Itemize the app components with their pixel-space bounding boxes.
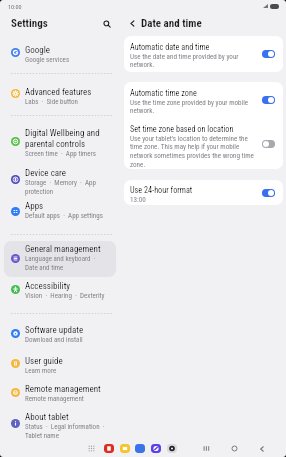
- staticText: Storage · Memory · App protection: [25, 179, 96, 196]
- button[interactable]: Back: [126, 17, 139, 30]
- button[interactable]: Back: [257, 444, 266, 453]
- staticText: User guide: [25, 356, 63, 367]
- staticText: Google: [25, 45, 51, 56]
- staticText: Download and install: [25, 336, 83, 344]
- staticText: Digital Wellbeing and parental controls: [25, 128, 100, 150]
- staticText: Use 24-hour format: [130, 185, 193, 195]
- button[interactable]: General management: [25, 244, 117, 272]
- staticText: Use your tablet's location to determine …: [130, 134, 255, 169]
- staticText: Apps: [25, 201, 44, 212]
- button[interactable]: App: [104, 444, 114, 453]
- staticText: Vision · Hearing · Dexterity: [25, 292, 105, 300]
- button[interactable]: Google: [25, 45, 117, 64]
- button[interactable]: All apps: [87, 444, 95, 452]
- button[interactable]: Switch on: [262, 50, 275, 58]
- button[interactable]: Accessibility: [25, 281, 117, 300]
- button[interactable]: Software update: [25, 325, 117, 344]
- button[interactable]: User guide: [25, 356, 117, 375]
- staticText: About tablet: [25, 412, 69, 423]
- button[interactable]: App: [120, 444, 130, 453]
- button[interactable]: Home: [230, 444, 239, 453]
- button[interactable]: Remote management: [25, 384, 117, 403]
- button[interactable]: App: [135, 444, 145, 453]
- button[interactable]: Apps: [25, 201, 117, 220]
- button[interactable]: Switch on: [262, 96, 275, 104]
- button[interactable]: Digital Wellbeing and parental controls: [25, 128, 117, 158]
- staticText: Accessibility: [25, 281, 71, 292]
- button[interactable]: Automatic time zone: [124, 82, 283, 118]
- staticText: General management: [25, 244, 101, 255]
- staticText: Language and keyboard · Date and time: [25, 255, 96, 272]
- button[interactable]: [4, 241, 116, 277]
- button[interactable]: Advanced features: [25, 87, 117, 106]
- button[interactable]: App: [167, 444, 177, 453]
- staticText: Screen time · App timers: [25, 150, 96, 158]
- staticText: Settings: [11, 17, 48, 30]
- staticText: Status · Legal information · Tablet name: [25, 423, 105, 440]
- staticText: Set time zone based on location: [130, 124, 234, 134]
- button[interactable]: Device care: [25, 168, 117, 196]
- staticText: Default apps · App settings: [25, 212, 103, 220]
- button[interactable]: Switch off: [262, 140, 275, 148]
- staticText: Automatic time zone: [130, 88, 197, 98]
- staticText: Remote management: [25, 395, 84, 403]
- staticText: Date and time: [141, 17, 202, 30]
- staticText: 13:00: [130, 195, 146, 203]
- button[interactable]: Set time zone based on location: [124, 118, 283, 169]
- staticText: Labs · Side button: [25, 98, 78, 106]
- button[interactable]: About tablet: [25, 412, 117, 440]
- button[interactable]: Automatic date and time: [124, 36, 283, 72]
- button[interactable]: App: [151, 444, 161, 453]
- staticText: Advanced features: [25, 87, 92, 98]
- staticText: Device care: [25, 168, 67, 179]
- button[interactable]: Use 24-hour format: [124, 180, 283, 205]
- staticText: Learn more: [25, 367, 57, 375]
- staticText: Use the time zone provided by your mobil…: [130, 98, 255, 115]
- staticText: Remote management: [25, 384, 101, 395]
- button[interactable]: Switch on: [262, 189, 275, 197]
- staticText: 10:00: [8, 3, 22, 10]
- staticText: Use the date and time provided by your n…: [130, 52, 255, 69]
- button[interactable]: Search: [100, 17, 114, 31]
- button[interactable]: Recents: [202, 444, 211, 453]
- staticText: Software update: [25, 325, 84, 336]
- staticText: Automatic date and time: [130, 42, 210, 52]
- staticText: Google services: [25, 56, 70, 64]
